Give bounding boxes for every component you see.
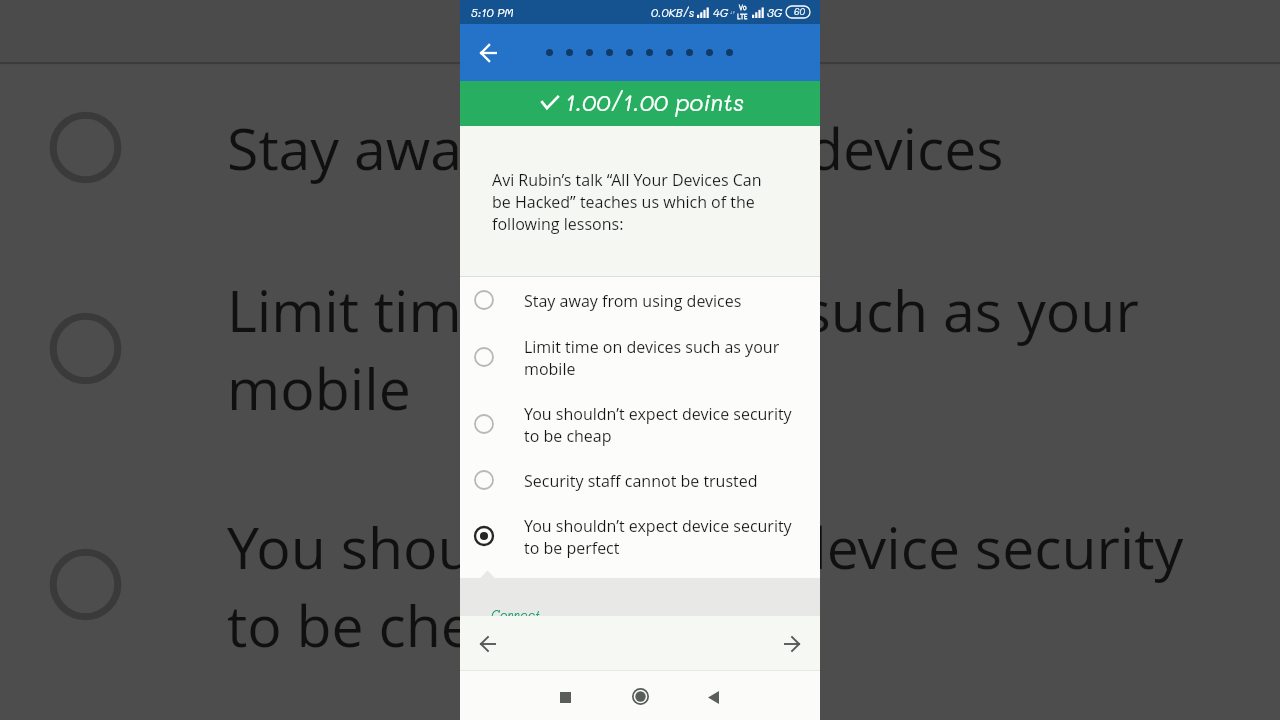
staticText: Stay away from using devices (227, 109, 1222, 187)
staticText: 1.00/1.00 points (565, 87, 745, 117)
button[interactable]: You shouldn’t expect device security to … (460, 402, 820, 446)
staticText: Limit time on devices such as your mobil… (227, 271, 1222, 427)
button[interactable]: Limit time on devices such as your mobil… (460, 335, 820, 379)
staticText: Limit time on devices such as your mobil… (524, 336, 806, 380)
staticText: Vo (739, 3, 747, 12)
staticText: 5:10 PM (471, 5, 514, 20)
button[interactable]: Stay away from using devices (460, 278, 820, 322)
staticText: You shouldn’t expect device security to … (227, 508, 1222, 664)
button[interactable]: Home (623, 679, 657, 713)
staticText: 4G (713, 5, 729, 20)
button[interactable]: Security staff cannot be trusted (460, 458, 820, 502)
button[interactable]: Next (775, 627, 809, 661)
staticText: 60 (794, 6, 805, 18)
button[interactable]: Previous (471, 627, 505, 661)
staticText: Correct (491, 607, 541, 623)
button[interactable]: You shouldn’t expect device security to … (460, 514, 820, 558)
staticText: 0.0KB/s (651, 5, 695, 20)
staticText: LTE (737, 12, 748, 21)
button[interactable]: Back (696, 680, 730, 714)
button[interactable]: Back (472, 37, 504, 69)
staticText: ↓↑ (730, 9, 735, 16)
staticText: Stay away from using devices (524, 290, 806, 312)
staticText: 3G (767, 5, 783, 20)
staticText: Avi Rubin’s talk “All Your Devices Can b… (492, 169, 769, 235)
staticText: You shouldn’t expect device security to … (524, 515, 806, 559)
staticText: Security staff cannot be trusted (524, 470, 806, 492)
staticText: You shouldn’t expect device security to … (524, 403, 806, 447)
button[interactable]: Recents (548, 680, 582, 714)
